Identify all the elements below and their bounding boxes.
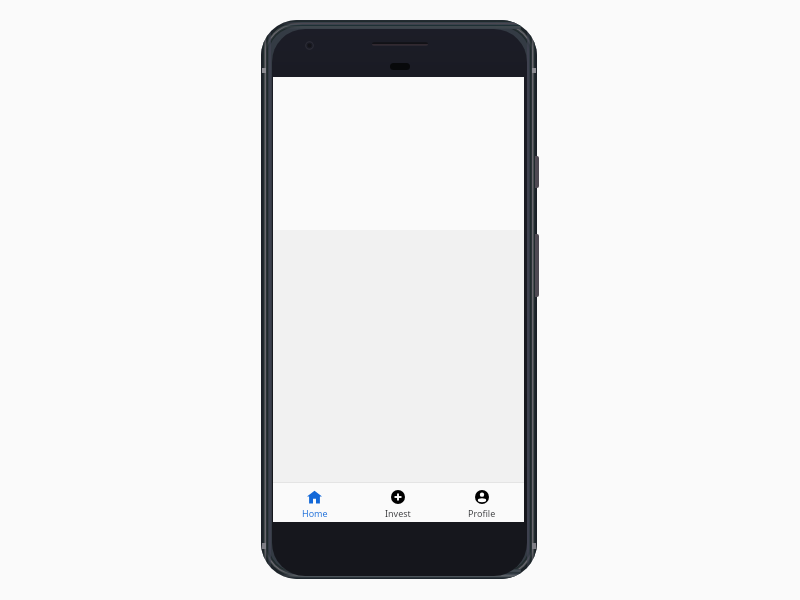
button[interactable]: Home xyxy=(273,485,356,524)
staticText: Profile xyxy=(468,507,496,519)
button[interactable]: Profile xyxy=(440,485,524,524)
staticText: Invest xyxy=(385,507,411,519)
button[interactable]: Invest xyxy=(356,485,440,524)
staticText: Home xyxy=(302,507,328,519)
